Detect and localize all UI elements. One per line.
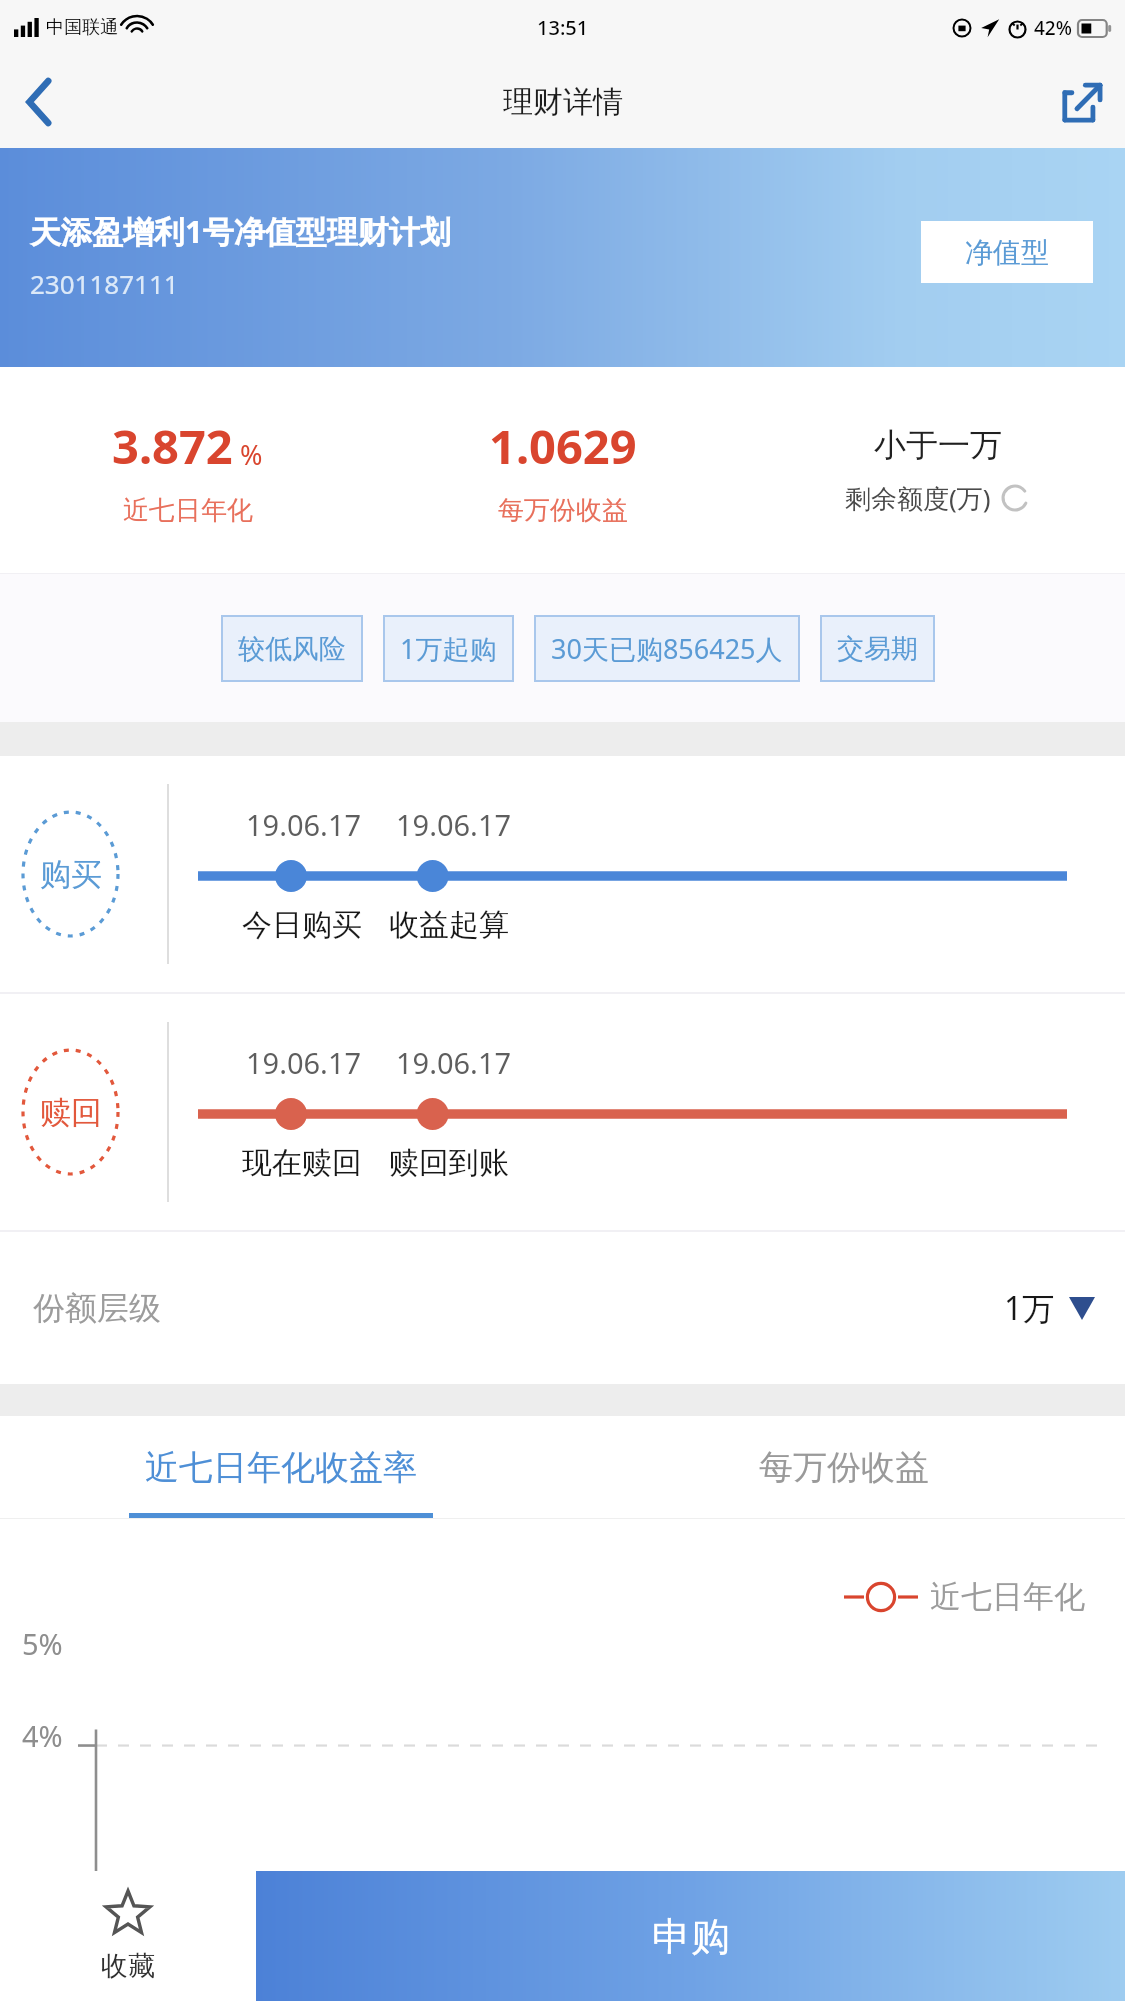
staticText: 理财详情 <box>503 83 623 121</box>
button[interactable]: Share <box>1039 59 1125 145</box>
staticText: 申购 <box>652 1912 730 1961</box>
staticText: 4% <box>22 1716 63 1755</box>
staticText: 收藏 <box>101 1949 155 1983</box>
staticText: 19.06.17 <box>396 805 512 844</box>
staticText: 购买 <box>40 855 102 894</box>
staticText: 赎回到账 <box>389 1144 509 1182</box>
staticText: 42% <box>1034 15 1072 41</box>
button[interactable]: 30天已购856425人 <box>551 615 783 682</box>
button[interactable]: 每万份收益 <box>562 1416 1125 1518</box>
staticText: 近七日年化 <box>123 494 253 527</box>
staticText: 1万起购 <box>400 630 497 667</box>
button[interactable]: Back <box>0 63 78 141</box>
staticText: 每万份收益 <box>759 1446 929 1489</box>
staticText: 3.872 <box>112 414 233 478</box>
staticText: 较低风险 <box>238 632 346 666</box>
staticText: 剩余额度(万) <box>845 480 991 516</box>
staticText: 19.06.17 <box>246 1043 362 1082</box>
button[interactable]: 交易期 <box>837 615 918 682</box>
staticText: 中国联通 <box>46 16 118 39</box>
staticText: 今日购买 <box>242 906 362 944</box>
staticText: 近七日年化 <box>930 1577 1085 1616</box>
staticText: 现在赎回 <box>242 1144 362 1182</box>
staticText: 天添盈增利1号净值型理财计划 <box>30 210 451 252</box>
staticText: 1万 <box>1004 1286 1055 1330</box>
button[interactable]: 份额层级 <box>0 1232 1125 1384</box>
staticText: 每万份收益 <box>498 494 628 527</box>
staticText: 30天已购856425人 <box>551 630 783 667</box>
staticText: 交易期 <box>837 632 918 666</box>
staticText: 1.0629 <box>489 414 637 478</box>
button[interactable]: 收藏 <box>0 1871 256 2001</box>
button[interactable]: 1万起购 <box>400 615 497 682</box>
staticText: 小于一万 <box>874 425 1002 465</box>
button[interactable]: 近七日年化收益率 <box>0 1416 562 1518</box>
staticText: 2301187111 <box>30 266 179 301</box>
staticText: 净值型 <box>965 235 1049 270</box>
button[interactable]: 较低风险 <box>238 615 346 682</box>
staticText: 近七日年化收益率 <box>145 1446 417 1489</box>
staticText: 赎回 <box>40 1093 102 1132</box>
button[interactable]: 申购 <box>256 1871 1125 2001</box>
staticText: % <box>240 436 263 473</box>
staticText: 5% <box>22 1624 63 1663</box>
button[interactable]: 净值型 <box>921 221 1093 283</box>
staticText: 收益起算 <box>389 906 509 944</box>
staticText: 13:51 <box>537 14 589 41</box>
staticText: 19.06.17 <box>396 1043 512 1082</box>
staticText: 份额层级 <box>33 1288 161 1328</box>
staticText: 19.06.17 <box>246 805 362 844</box>
button[interactable]: Refresh <box>999 482 1031 514</box>
